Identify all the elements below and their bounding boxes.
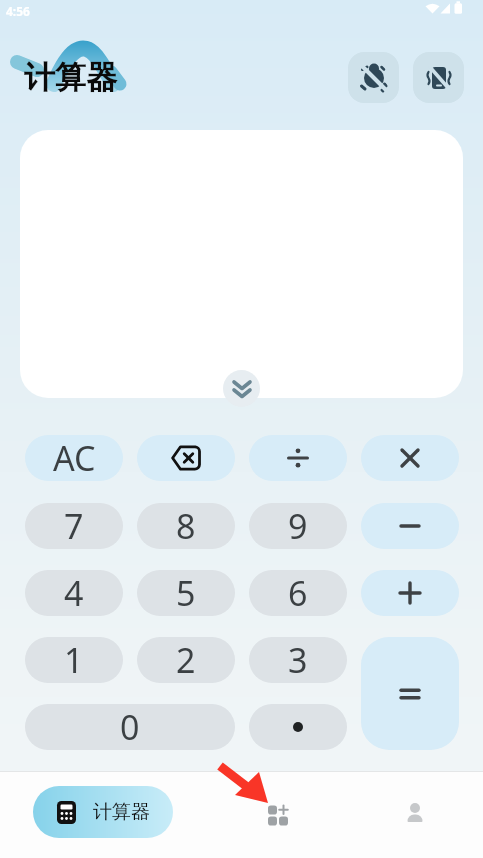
staticText: 6 — [288, 570, 308, 616]
staticText: 计算器 — [24, 58, 117, 97]
button[interactable] — [249, 435, 347, 481]
staticText: 3 — [288, 637, 308, 683]
button[interactable] — [137, 435, 235, 481]
button[interactable]: 0 — [25, 704, 235, 750]
button[interactable]: 2 — [137, 637, 235, 683]
staticText: 9 — [288, 503, 308, 549]
button[interactable] — [361, 637, 459, 750]
staticText: 4 — [64, 570, 84, 616]
button[interactable] — [361, 570, 459, 616]
button[interactable]: 1 — [25, 637, 123, 683]
staticText: 0 — [120, 704, 140, 750]
button[interactable] — [413, 52, 464, 103]
button[interactable] — [391, 789, 439, 837]
staticText: 8 — [176, 503, 196, 549]
button[interactable]: 4 — [25, 570, 123, 616]
staticText: 1 — [64, 637, 84, 683]
button[interactable] — [249, 704, 347, 750]
button[interactable]: 9 — [249, 503, 347, 549]
button[interactable]: 8 — [137, 503, 235, 549]
button[interactable]: 6 — [249, 570, 347, 616]
button[interactable] — [254, 789, 302, 837]
button[interactable]: 3 — [249, 637, 347, 683]
staticText: 5 — [176, 570, 196, 616]
button[interactable]: AC — [25, 435, 123, 481]
button[interactable]: 计算器 — [33, 786, 173, 838]
staticText: 7 — [64, 503, 84, 549]
staticText: 4:56 — [6, 3, 30, 19]
staticText: 2 — [176, 637, 196, 683]
button[interactable] — [361, 435, 459, 481]
button[interactable] — [361, 503, 459, 549]
staticText: AC — [53, 435, 96, 481]
staticText: 计算器 — [93, 800, 150, 824]
button[interactable] — [348, 52, 399, 103]
button[interactable]: 5 — [137, 570, 235, 616]
button[interactable]: 7 — [25, 503, 123, 549]
button[interactable] — [223, 370, 260, 407]
